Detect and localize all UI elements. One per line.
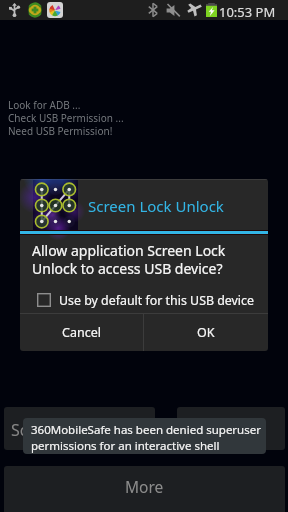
- staticText: OK: [197, 324, 215, 341]
- staticText: Need USB Permission!: [8, 124, 113, 137]
- other: USB connected: [9, 3, 20, 17]
- other: Browser notification: [47, 2, 63, 18]
- other: Airplane mode on: [187, 3, 202, 17]
- other: Battery charging: [206, 3, 217, 17]
- staticText: 10:53 PM: [219, 3, 276, 21]
- button[interactable]: [177, 407, 285, 450]
- button[interactable]: Cancel: [20, 314, 143, 351]
- staticText: Allow application Screen Lock Unlock to …: [32, 241, 226, 278]
- other: Security app notification: [28, 3, 42, 17]
- staticText: Screen Lock Unlock: [88, 196, 224, 216]
- staticText: 360MobileSafe has been denied superuser …: [31, 422, 261, 453]
- staticText: More: [125, 476, 164, 497]
- staticText: Look for ADB ...: [8, 98, 81, 111]
- staticText: Screen Lock Unlock: [11, 419, 155, 441]
- staticText: Check USB Permission ...: [8, 111, 124, 124]
- button[interactable]: OK: [144, 314, 268, 351]
- button[interactable]: Screen Lock Unlock: [4, 407, 155, 450]
- button[interactable]: More: [4, 466, 285, 512]
- staticText: Use by default for this USB device: [59, 292, 254, 309]
- other: Sound muted: [166, 4, 181, 17]
- other: Bluetooth on: [148, 3, 158, 17]
- staticText: Cancel: [62, 324, 101, 341]
- button[interactable]: Use by default for this USB device: [20, 287, 268, 313]
